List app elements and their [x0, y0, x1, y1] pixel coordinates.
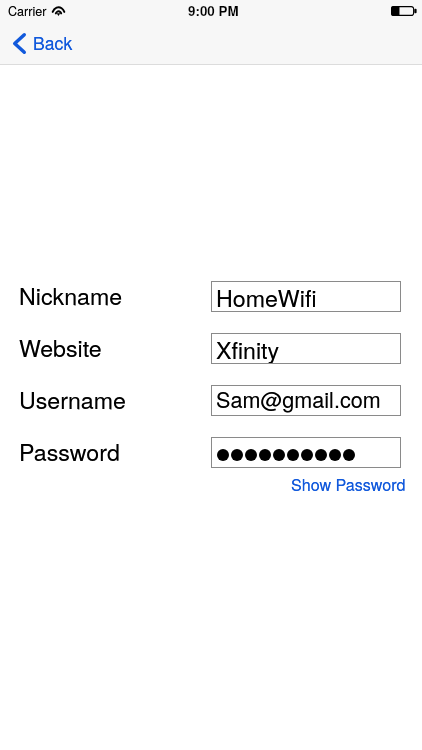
staticText: HomeWifi	[216, 280, 317, 311]
staticText: 9:00 PM	[188, 1, 239, 20]
staticText: Website	[19, 330, 102, 361]
staticText: Nickname	[19, 278, 123, 309]
staticText: Carrier	[8, 2, 47, 20]
button[interactable]: Show Password	[291, 474, 406, 497]
button[interactable]	[211, 437, 401, 468]
other: Back	[13, 33, 26, 54]
staticText: Password	[19, 434, 120, 465]
other: Wi-Fi signal	[52, 6, 65, 16]
staticText: Xfinity	[216, 332, 280, 363]
button[interactable]: HomeWifi	[211, 281, 401, 312]
staticText: HomeWifi	[216, 280, 317, 311]
staticText: Username	[19, 382, 126, 413]
staticText: Nickname	[19, 278, 123, 309]
staticText: Sam@gmail.com	[216, 383, 381, 414]
staticText: Back	[33, 30, 73, 55]
button[interactable]: Xfinity	[211, 333, 401, 364]
staticText: Sam@gmail.com	[216, 383, 381, 414]
staticText: Back	[33, 30, 73, 55]
other: Battery	[391, 6, 417, 16]
staticText: Carrier	[8, 2, 47, 20]
staticText: Website	[19, 330, 102, 361]
staticText: Show Password	[291, 473, 406, 496]
staticText: Username	[19, 382, 126, 413]
staticText: Xfinity	[216, 332, 280, 363]
button[interactable]: Back	[0, 22, 85, 64]
staticText: Password	[19, 434, 120, 465]
button[interactable]: Sam@gmail.com	[211, 385, 401, 416]
staticText: Show Password	[291, 473, 406, 496]
